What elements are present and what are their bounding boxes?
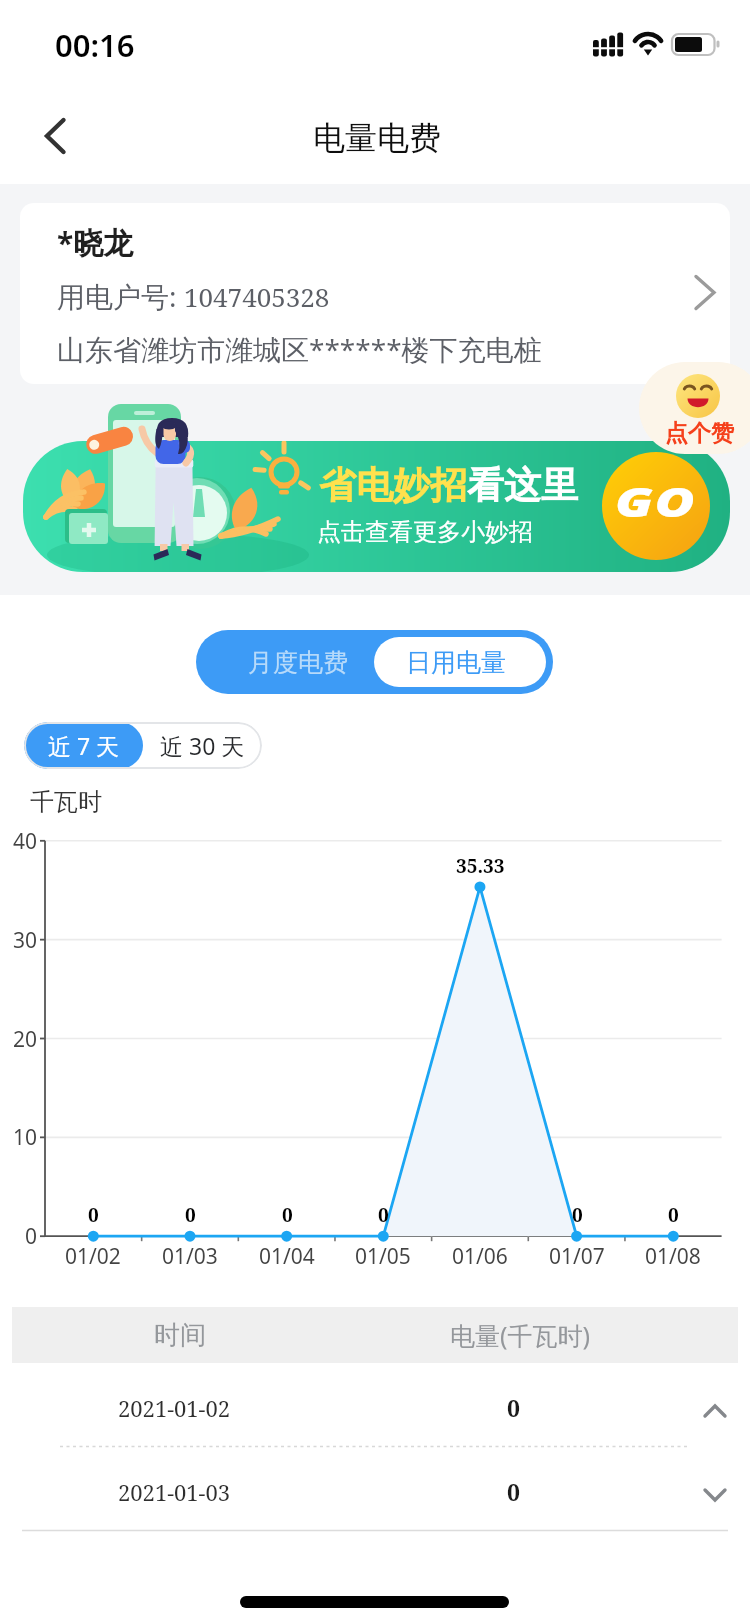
staticText: 用电户号:: [57, 277, 184, 315]
button[interactable]: 日用电量: [374, 637, 546, 687]
staticText: 00:16: [55, 24, 135, 66]
staticText: 点击查看更多小妙招: [317, 517, 533, 547]
staticText: 千瓦时: [30, 787, 102, 817]
staticText: 01/07: [549, 1242, 605, 1271]
staticText: 0: [25, 1222, 38, 1251]
staticText: 1047405328: [184, 279, 330, 314]
staticText: 0: [668, 1202, 679, 1228]
staticText: 0: [378, 1202, 389, 1228]
staticText: 0: [88, 1202, 99, 1228]
button[interactable]: Back: [16, 104, 96, 168]
staticText: 时间: [154, 1319, 206, 1352]
staticText: 01/02: [65, 1242, 121, 1271]
staticText: 01/04: [259, 1242, 315, 1271]
staticText: 电量电费: [313, 118, 441, 158]
staticText: 0: [185, 1202, 196, 1228]
staticText: 电量(千瓦时): [450, 1318, 591, 1352]
staticText: 20: [13, 1025, 38, 1054]
staticText: 0: [282, 1202, 293, 1228]
staticText: 0: [507, 1476, 520, 1507]
staticText: 近 7 天: [48, 730, 120, 761]
staticText: 山东省潍坊市潍城区******楼下充电桩: [57, 330, 542, 368]
staticText: 0: [507, 1392, 520, 1423]
staticText: 40: [13, 827, 38, 856]
button[interactable]: *晓龙: [20, 203, 730, 384]
staticText: 30: [13, 926, 38, 955]
staticText: 2021-01-02: [118, 1393, 231, 1423]
staticText: 01/03: [162, 1242, 218, 1271]
button[interactable]: 月度电费: [203, 637, 374, 687]
staticText: *晓龙: [57, 222, 134, 263]
staticText: 01/06: [452, 1242, 508, 1271]
staticText: 10: [13, 1123, 38, 1152]
staticText: 省电妙招: [319, 462, 467, 509]
staticText: 看这里: [467, 462, 578, 509]
staticText: 01/08: [645, 1242, 701, 1271]
button[interactable]: 省电妙招: [23, 441, 730, 572]
button[interactable]: 近 30 天: [143, 722, 262, 769]
staticText: GO: [615, 473, 696, 529]
staticText: 近 30 天: [160, 730, 245, 761]
staticText: 点个赞: [665, 419, 734, 448]
button[interactable]: 2021-01-02: [0, 1363, 750, 1446]
staticText: 35.33: [456, 853, 505, 879]
staticText: 月度电费: [248, 647, 348, 678]
staticText: 01/05: [355, 1242, 411, 1271]
button[interactable]: 近 7 天: [24, 722, 143, 769]
staticText: 2021-01-03: [118, 1477, 231, 1507]
staticText: 0: [572, 1202, 583, 1228]
staticText: 日用电量: [406, 647, 506, 678]
button[interactable]: Like: [639, 362, 750, 454]
button[interactable]: 2021-01-03: [0, 1447, 750, 1530]
